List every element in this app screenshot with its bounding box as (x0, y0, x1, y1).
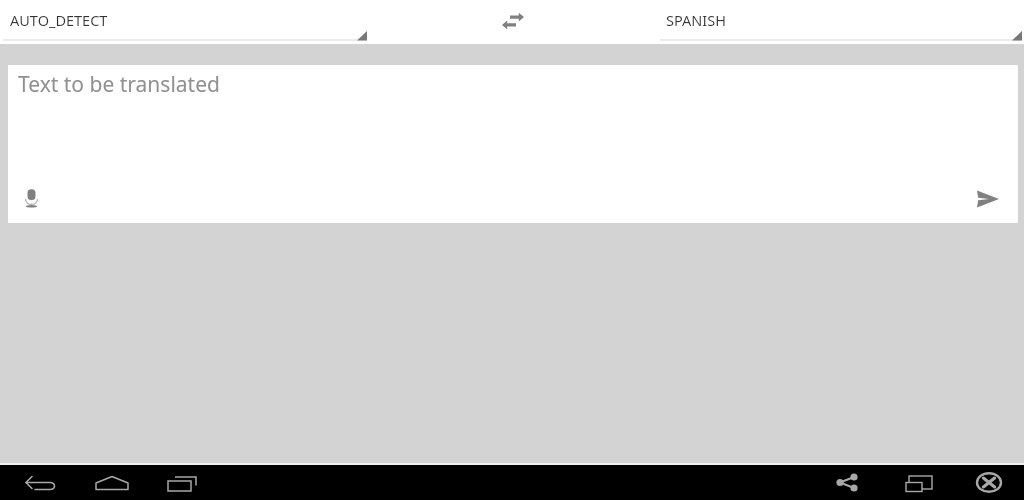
staticText: AUTO_DETECT (10, 10, 108, 30)
button[interactable]: Multi window (891, 465, 931, 500)
button[interactable]: Translate (970, 181, 1006, 217)
button[interactable]: AUTO_DETECT (0, 0, 367, 44)
staticText: Text to be translated (18, 70, 220, 99)
button[interactable]: Close (969, 465, 1009, 500)
button[interactable]: Swap languages (496, 4, 530, 38)
button[interactable]: Share (826, 465, 866, 500)
button[interactable]: Recent apps (164, 465, 204, 500)
button[interactable]: Home (92, 465, 132, 500)
button[interactable]: Voice input (19, 186, 44, 211)
button[interactable]: Back (21, 465, 61, 500)
button[interactable]: SPANISH (660, 0, 1022, 44)
staticText: SPANISH (666, 10, 726, 30)
